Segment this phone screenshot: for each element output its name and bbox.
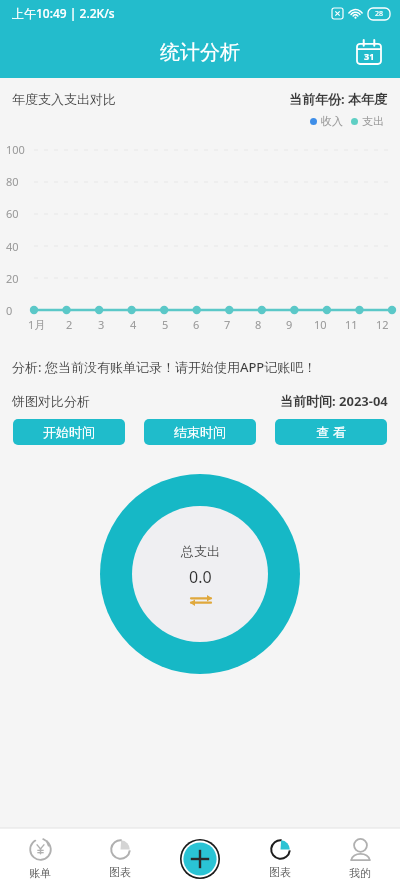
staticText: 9 xyxy=(286,317,293,332)
staticText: 当前时间: 2023-04 xyxy=(280,392,388,410)
staticText: 饼图对比分析 xyxy=(12,393,90,409)
staticText: 60 xyxy=(6,206,19,221)
staticText: 开始时间 xyxy=(43,424,95,440)
staticText: 10 xyxy=(314,317,327,332)
button[interactable]: Calendar xyxy=(352,35,386,69)
staticText: 3 xyxy=(98,317,105,332)
button[interactable]: Add record xyxy=(178,837,222,881)
staticText: 查 看 xyxy=(316,423,346,441)
button[interactable]: 账单 xyxy=(0,828,80,890)
staticText: 6 xyxy=(193,317,200,332)
staticText: 2 xyxy=(66,317,73,332)
staticText: 7 xyxy=(224,317,231,332)
staticText: 100 xyxy=(6,142,25,157)
staticText: 28 xyxy=(375,9,384,19)
staticText: 图表 xyxy=(109,865,131,879)
staticText: 图表 xyxy=(269,865,291,879)
staticText: 收入 xyxy=(321,114,343,128)
staticText: 分析: 您当前没有账单记录！请开始使用APP记账吧！ xyxy=(12,358,317,376)
button[interactable]: 我的 xyxy=(320,828,400,890)
staticText: 上午10:49 | 2.2K/s xyxy=(12,5,115,21)
button[interactable]: 图表 xyxy=(240,828,320,890)
button[interactable]: 当前年份: 本年度 xyxy=(289,90,388,108)
staticText: 8 xyxy=(255,317,262,332)
button[interactable]: 结束时间 xyxy=(144,419,256,445)
staticText: 5 xyxy=(162,317,169,332)
staticText: 0.0 xyxy=(189,566,212,588)
staticText: 年度支入支出对比 xyxy=(12,91,116,107)
staticText: 0 xyxy=(6,303,13,318)
staticText: 总支出 xyxy=(181,543,220,559)
staticText: 4 xyxy=(130,317,137,332)
staticText: 我的 xyxy=(349,866,371,880)
staticText: 1月 xyxy=(28,317,46,332)
button[interactable]: 查 看 xyxy=(275,419,387,445)
staticText: 31 xyxy=(364,50,375,62)
staticText: 20 xyxy=(6,271,19,286)
button[interactable]: 图表 xyxy=(80,828,160,890)
staticText: 结束时间 xyxy=(174,424,226,440)
staticText: 80 xyxy=(6,174,19,189)
button[interactable]: 开始时间 xyxy=(13,419,125,445)
staticText: 支出 xyxy=(362,114,384,128)
staticText: 统计分析 xyxy=(160,40,240,65)
staticText: 账单 xyxy=(29,866,51,880)
staticText: 11 xyxy=(345,317,358,332)
staticText: 12 xyxy=(376,317,389,332)
staticText: 40 xyxy=(6,239,19,254)
